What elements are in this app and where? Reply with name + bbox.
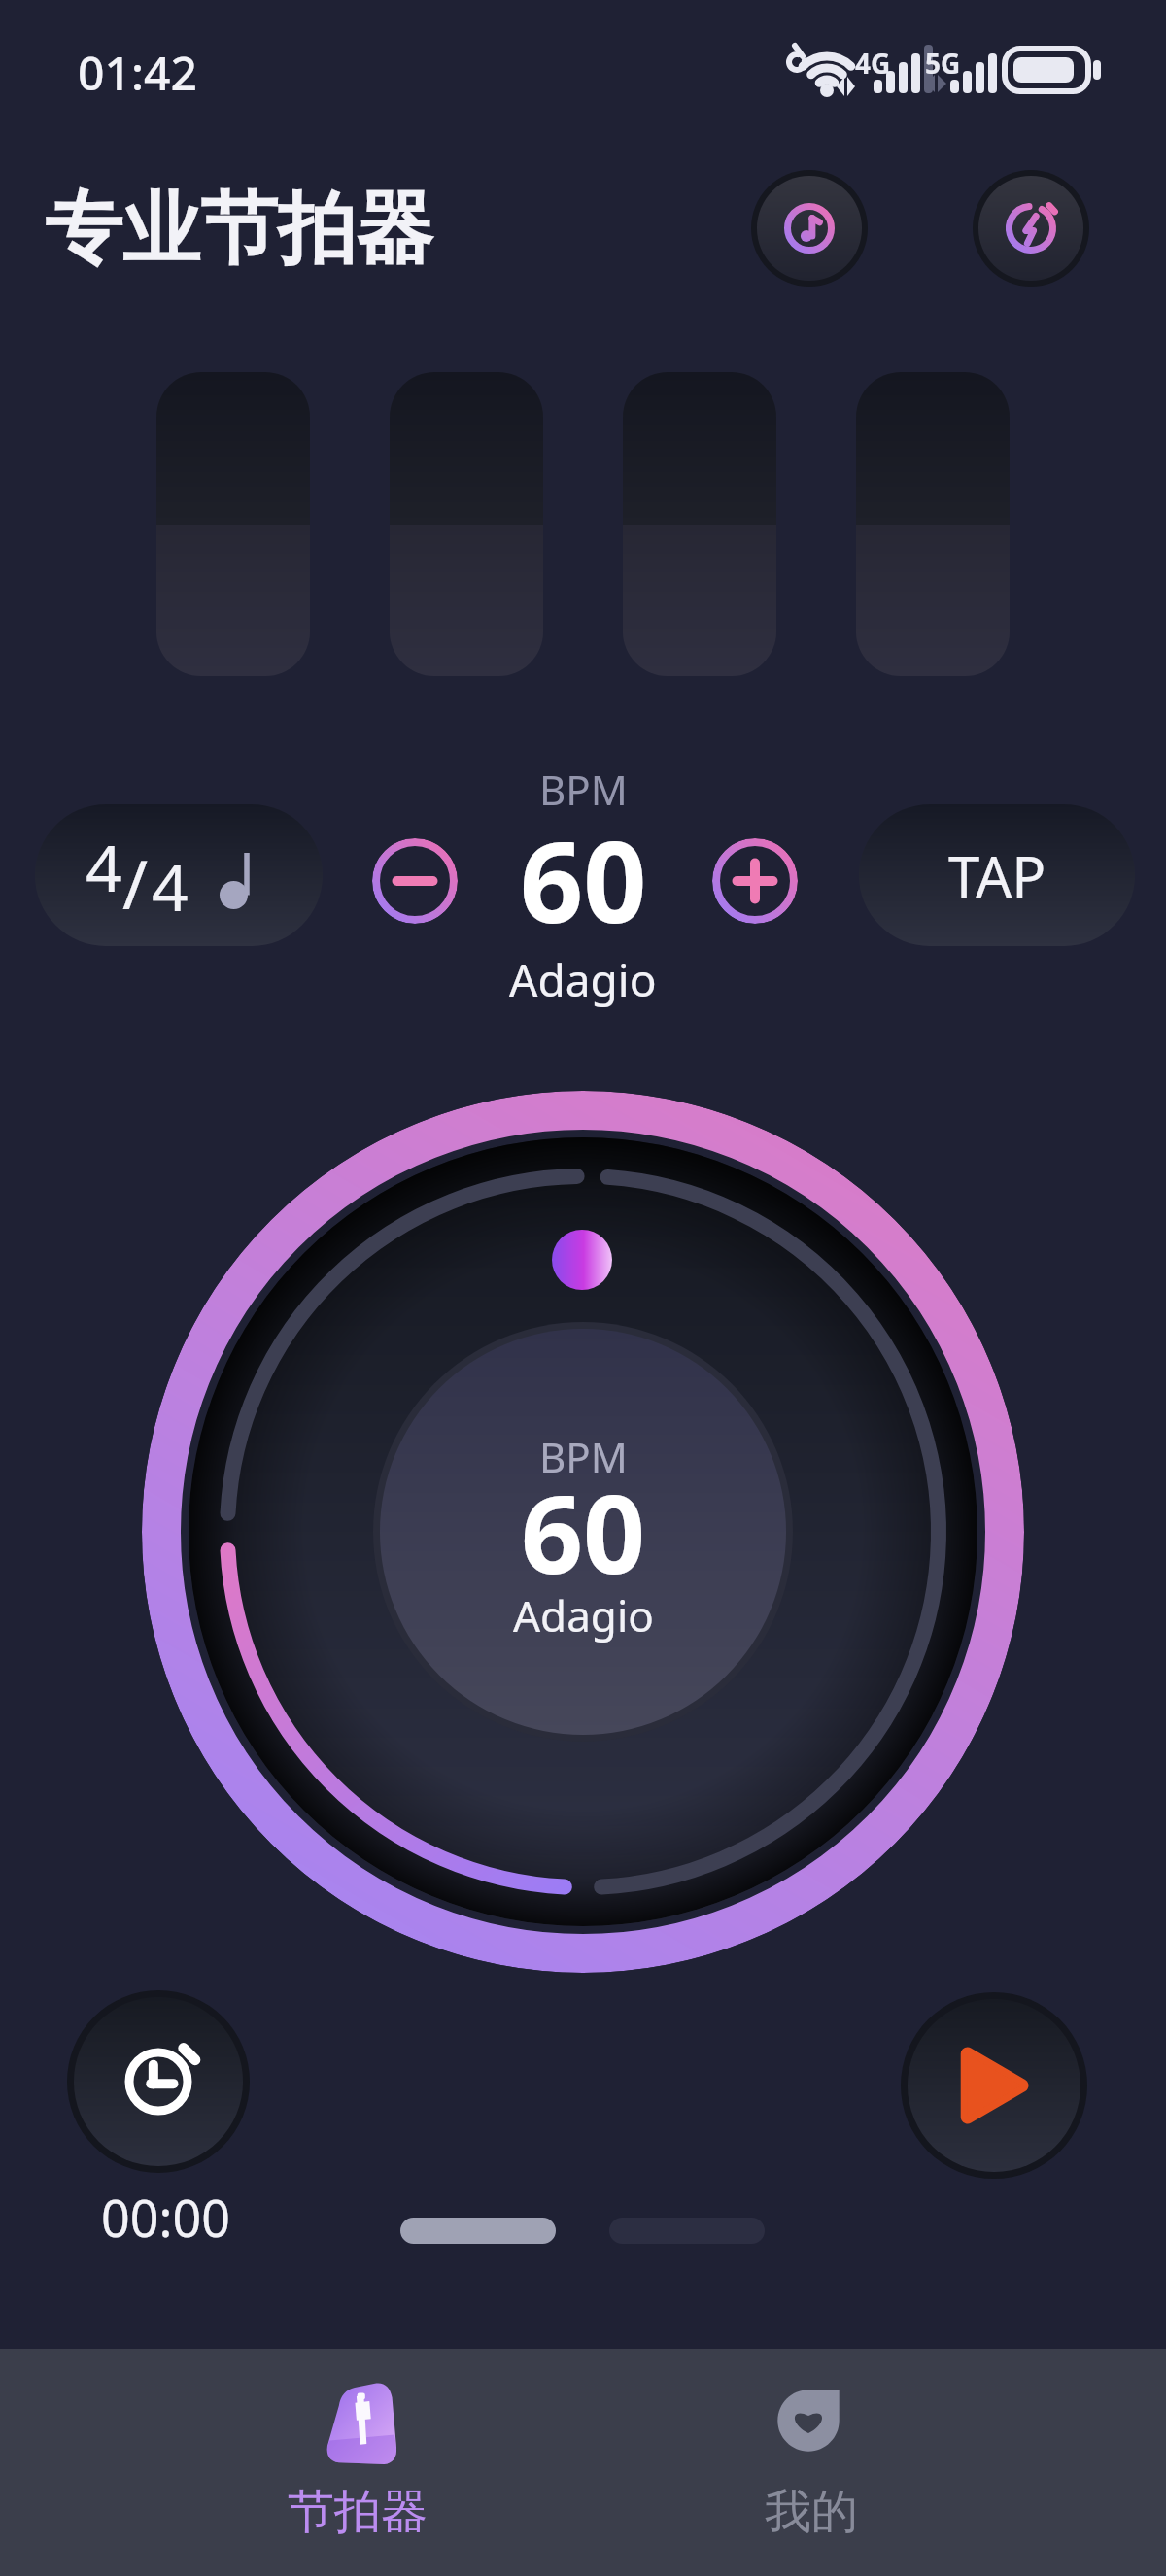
staticText: Adagio [509, 949, 657, 1010]
staticText: 4 [152, 842, 189, 930]
staticText: 00:00 [101, 2183, 230, 2252]
staticText: 60 [521, 1457, 646, 1606]
staticText: 4 [86, 823, 122, 910]
staticText: 4G [855, 45, 891, 82]
button[interactable] [856, 372, 1010, 676]
staticText: 专业节拍器 [45, 181, 433, 279]
button[interactable]: 4 [35, 804, 323, 946]
button[interactable]: Play [908, 1999, 1080, 2172]
staticText: 01:42 [78, 41, 197, 104]
button[interactable]: 节拍器 [204, 2349, 515, 2576]
staticText: 我的 [765, 2483, 858, 2541]
button[interactable] [390, 372, 543, 676]
button[interactable]: Increase BPM [712, 838, 798, 924]
button[interactable]: Decrease BPM [372, 838, 458, 924]
staticText: TAP [948, 837, 1046, 914]
staticText: BPM [539, 762, 628, 817]
button[interactable] [623, 372, 776, 676]
button[interactable]: Sound settings [757, 176, 862, 281]
button[interactable]: BPM dial [142, 1091, 1024, 1973]
button[interactable]: Timer [74, 1997, 243, 2166]
staticText: 60 [520, 804, 647, 955]
button[interactable] [156, 372, 310, 676]
button[interactable]: Speed trainer [978, 176, 1083, 281]
staticText: / [122, 836, 149, 929]
staticText: Adagio [513, 1586, 654, 1644]
staticText: 5G [925, 45, 961, 82]
button[interactable]: TAP [859, 804, 1135, 946]
staticText: BPM [539, 1429, 628, 1484]
staticText: 节拍器 [288, 2483, 428, 2541]
button[interactable]: 我的 [651, 2349, 962, 2576]
